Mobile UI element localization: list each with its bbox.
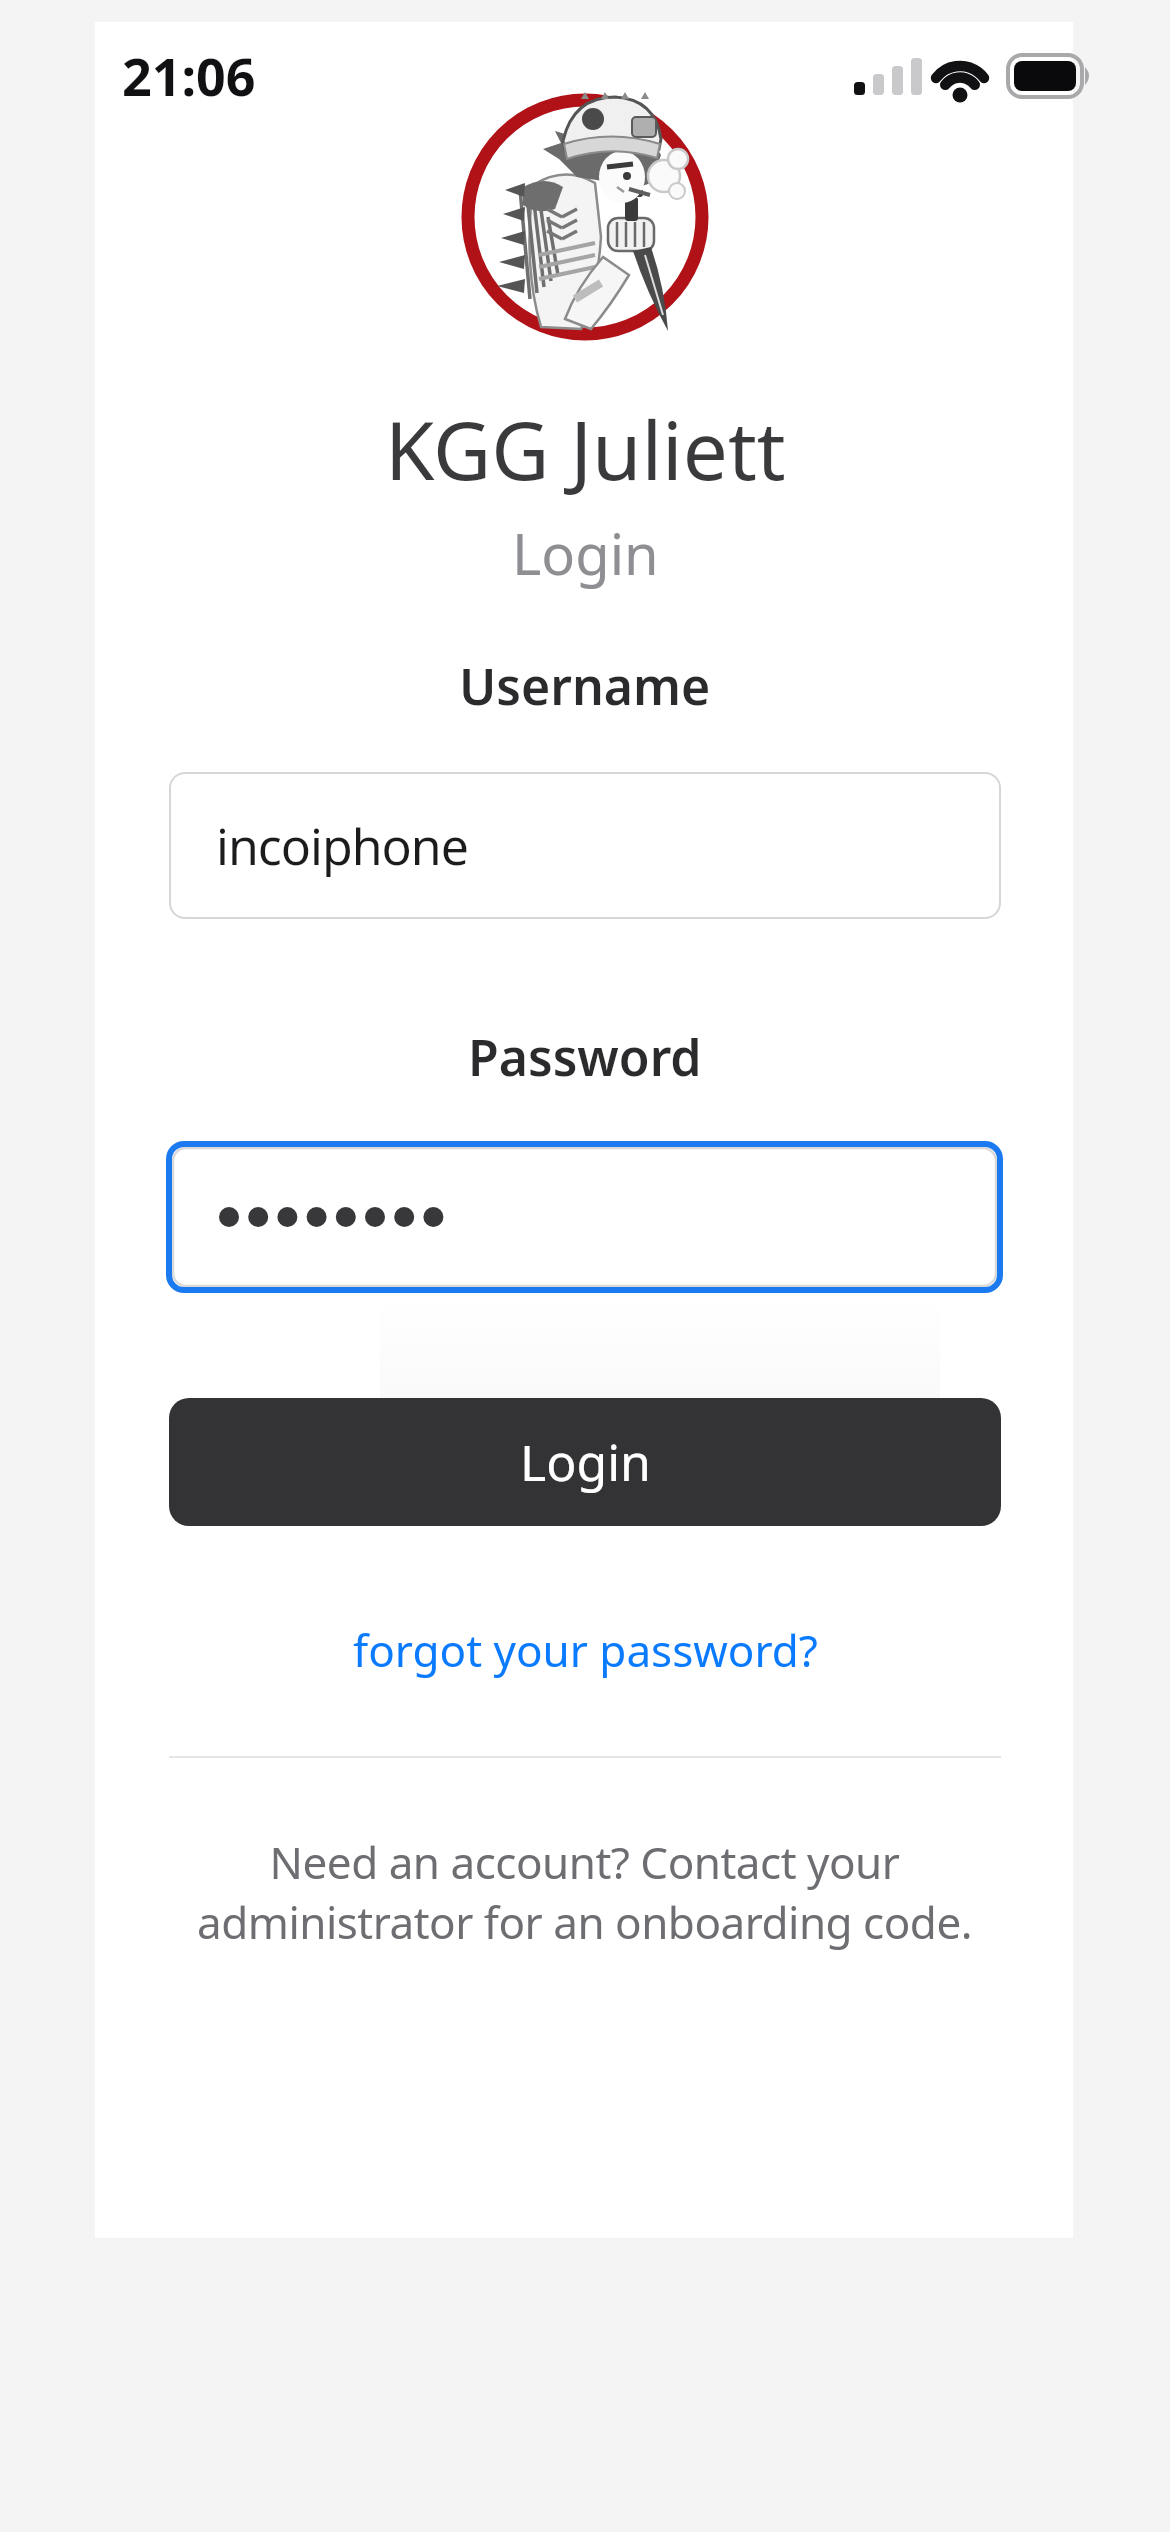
staticText: incoiphone [216, 812, 468, 880]
staticText: Login [520, 1428, 651, 1496]
staticText: KGG Juliett [385, 394, 786, 503]
staticText: Login [512, 515, 659, 591]
staticText: 21:06 [122, 40, 256, 111]
staticText: Password [468, 1023, 702, 1091]
staticText: Need an account? Contact your administra… [197, 1832, 972, 1952]
staticText: Username [459, 652, 711, 720]
staticText: forgot your password? [353, 1620, 818, 1680]
